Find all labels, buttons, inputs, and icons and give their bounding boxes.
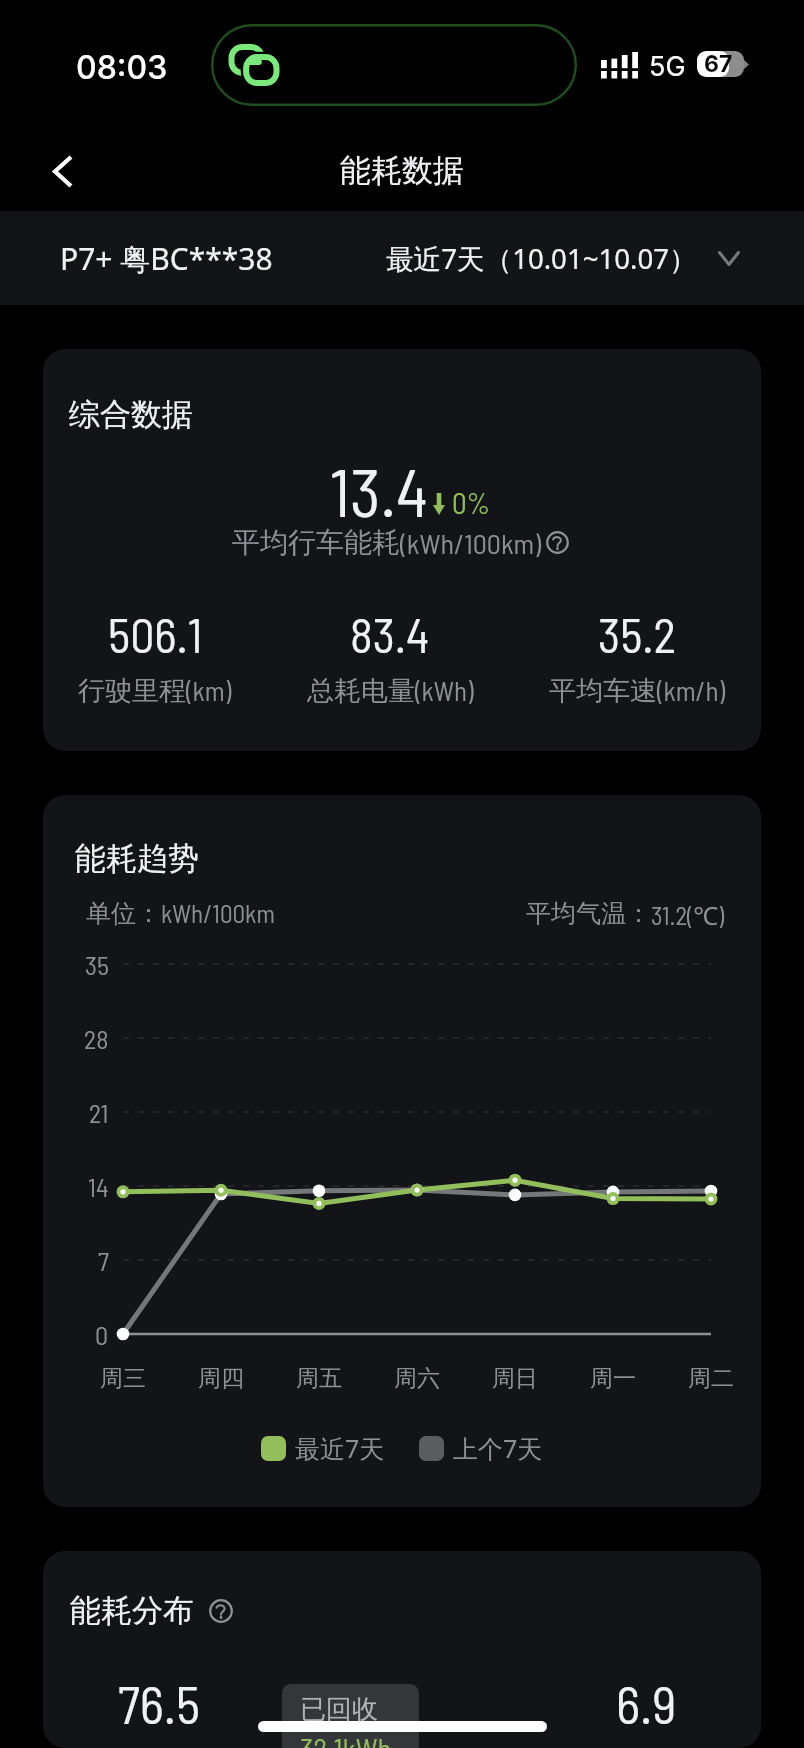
staticText: 6.9 (616, 1672, 677, 1734)
staticText: 7 (98, 1245, 109, 1276)
staticText: kWh/100km (161, 898, 275, 928)
staticText: 32.1kWh (300, 1731, 392, 1748)
staticText: (kWh) (415, 674, 474, 706)
staticText: 28 (84, 1023, 109, 1054)
staticText: (km/h) (657, 674, 726, 706)
staticText: 周日 (492, 1364, 538, 1393)
staticText: 平均气温： (526, 898, 651, 929)
staticText: 21 (89, 1097, 109, 1128)
staticText: 83.4 (350, 605, 430, 663)
staticText: 35 (85, 949, 109, 980)
staticText: 单位： (86, 898, 161, 929)
staticText: 综合数据 (69, 395, 193, 434)
staticText: 能耗分布 (70, 1591, 194, 1630)
staticText: 506.1 (108, 605, 203, 663)
staticText: 最近7天（10.01~10.07） (386, 239, 697, 277)
button[interactable]: Help (209, 1599, 233, 1623)
staticText: 31.2(℃) (651, 898, 725, 932)
staticText: 已回收 (300, 1693, 378, 1726)
button[interactable]: P7+ 粤BC***38 (0, 238, 213, 279)
staticText: 周六 (394, 1364, 440, 1393)
button[interactable]: Back (29, 137, 97, 205)
staticText: 平均车速 (549, 674, 657, 708)
staticText: 76.5 (118, 1672, 200, 1734)
staticText: (kWh/100km) (400, 526, 541, 560)
staticText: 总耗电量 (307, 674, 415, 708)
staticText: 67 (704, 51, 733, 76)
staticText: 周一 (590, 1364, 636, 1393)
staticText: 周三 (100, 1364, 146, 1393)
staticText: 平均行车能耗 (232, 525, 400, 560)
staticText: 0 (95, 1319, 109, 1350)
staticText: 14 (88, 1171, 109, 1202)
staticText: 能耗数据 (340, 151, 464, 190)
staticText: 行驶里程 (78, 674, 186, 708)
button[interactable]: Help (546, 531, 569, 554)
staticText: 0% (452, 485, 491, 520)
staticText: 上个7天 (453, 1431, 543, 1465)
staticText: 35.2 (598, 605, 677, 663)
staticText: (km) (186, 674, 232, 706)
staticText: 最近7天 (295, 1431, 385, 1465)
staticText: 13.4 (330, 451, 428, 530)
staticText: 周五 (296, 1364, 342, 1393)
staticText: 周四 (198, 1364, 244, 1393)
staticText: 08:03 (76, 48, 168, 87)
button[interactable]: 最近7天（10.01~10.07） (450, 239, 804, 277)
staticText: 周二 (688, 1364, 734, 1393)
staticText: 5G (649, 50, 686, 83)
staticText: 能耗趋势 (75, 839, 199, 878)
